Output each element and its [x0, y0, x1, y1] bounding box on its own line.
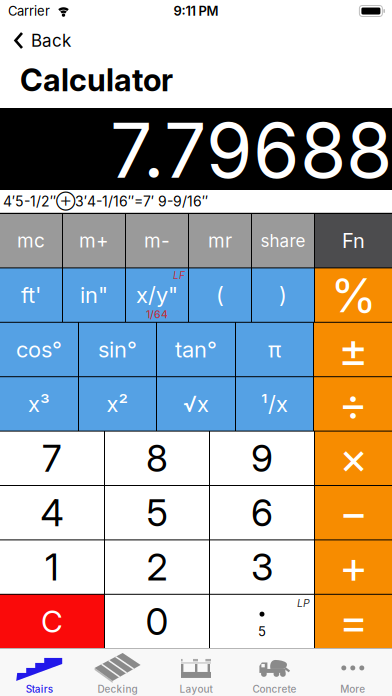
- staticText: 5: [146, 490, 167, 535]
- staticText: sin°: [98, 336, 137, 363]
- button[interactable]: Layout: [157, 649, 235, 696]
- button[interactable]: 6: [210, 486, 314, 539]
- staticText: 6: [251, 490, 273, 535]
- staticText: mr: [208, 229, 232, 252]
- staticText: 3: [251, 545, 273, 589]
- staticText: Concrete: [252, 683, 296, 695]
- staticText: ¹/x: [261, 391, 288, 417]
- staticText: ×: [339, 432, 368, 485]
- button[interactable]: 2: [105, 540, 209, 594]
- button[interactable]: ÷: [314, 377, 392, 431]
- staticText: share: [260, 230, 305, 251]
- button[interactable]: ft': [0, 268, 62, 322]
- staticText: 9:11 PM: [173, 3, 218, 19]
- button[interactable]: m-: [126, 214, 188, 267]
- button[interactable]: 1: [0, 540, 104, 594]
- staticText: Layout: [179, 683, 212, 695]
- button[interactable]: Fn: [315, 214, 392, 267]
- staticText: ÷: [338, 377, 367, 430]
- button[interactable]: ×: [315, 432, 392, 485]
- staticText: cos°: [16, 336, 62, 363]
- staticText: Carrier: [8, 3, 50, 19]
- staticText: x²: [106, 391, 128, 417]
- button[interactable]: mr: [189, 214, 251, 267]
- staticText: 0: [145, 599, 168, 644]
- staticText: C: [41, 603, 63, 640]
- staticText: 9: [251, 436, 273, 481]
- button[interactable]: π: [236, 323, 313, 376]
- staticText: 1: [45, 545, 59, 589]
- staticText: Back: [31, 30, 71, 51]
- button[interactable]: 5: [210, 595, 314, 648]
- button[interactable]: (: [189, 268, 251, 322]
- button[interactable]: C: [0, 595, 104, 648]
- staticText: 1/64: [146, 308, 168, 321]
- button[interactable]: cos°: [0, 323, 78, 376]
- button[interactable]: =: [315, 595, 392, 648]
- staticText: √x: [183, 391, 209, 417]
- staticText: +: [339, 540, 368, 594]
- button[interactable]: in": [63, 268, 125, 322]
- button[interactable]: ±: [314, 323, 392, 376]
- button[interactable]: %: [315, 268, 392, 322]
- button[interactable]: Decking: [78, 649, 157, 696]
- staticText: %: [330, 267, 376, 324]
- staticText: 4: [40, 490, 63, 535]
- button[interactable]: −: [315, 486, 392, 539]
- staticText: LP: [297, 597, 310, 609]
- staticText: Fn: [342, 229, 365, 253]
- button[interactable]: +: [315, 540, 392, 594]
- staticText: 5: [258, 624, 266, 639]
- button[interactable]: x²: [79, 377, 156, 431]
- staticText: 2: [146, 545, 167, 589]
- button[interactable]: 0: [105, 595, 209, 648]
- staticText: More: [340, 683, 365, 695]
- staticText: x/y": [136, 282, 178, 308]
- staticText: x³: [28, 391, 50, 417]
- staticText: −: [339, 486, 368, 539]
- button[interactable]: tan°: [157, 323, 235, 376]
- button[interactable]: m+: [63, 214, 125, 267]
- staticText: =: [339, 595, 368, 648]
- button[interactable]: mc: [0, 214, 62, 267]
- button[interactable]: 3: [210, 540, 314, 594]
- button[interactable]: x³: [0, 377, 78, 431]
- staticText: m-: [144, 229, 170, 252]
- staticText: ): [279, 282, 287, 308]
- button[interactable]: ¹/x: [236, 377, 313, 431]
- button[interactable]: 9: [210, 432, 314, 485]
- staticText: 4′5-1/2″⊕3′4-1/16″=7′ 9-9/16″: [3, 193, 208, 210]
- staticText: mc: [17, 229, 45, 252]
- button[interactable]: More: [314, 649, 392, 696]
- staticText: 7: [42, 436, 62, 481]
- button[interactable]: √x: [157, 377, 235, 431]
- button[interactable]: x/y": [126, 268, 188, 322]
- button[interactable]: share: [252, 214, 314, 267]
- button[interactable]: 7: [0, 432, 104, 485]
- button[interactable]: ): [252, 268, 314, 322]
- staticText: π: [268, 336, 281, 363]
- staticText: tan°: [175, 336, 217, 363]
- staticText: m+: [79, 229, 109, 252]
- button[interactable]: 8: [105, 432, 209, 485]
- staticText: Calculator: [20, 61, 173, 99]
- staticText: ft': [21, 282, 41, 308]
- button[interactable]: Stairs: [0, 649, 78, 696]
- button[interactable]: 4: [0, 486, 104, 539]
- button[interactable]: sin°: [79, 323, 156, 376]
- staticText: Stairs: [26, 683, 53, 695]
- staticText: ±: [338, 322, 368, 377]
- button[interactable]: 5: [105, 486, 209, 539]
- staticText: 8: [146, 436, 168, 481]
- button[interactable]: Concrete: [235, 649, 314, 696]
- staticText: 7.79688: [110, 105, 392, 196]
- button[interactable]: Back: [13, 30, 71, 51]
- staticText: in": [80, 282, 108, 308]
- staticText: Decking: [98, 683, 138, 695]
- staticText: (: [216, 282, 224, 308]
- staticText: LF: [173, 269, 185, 281]
